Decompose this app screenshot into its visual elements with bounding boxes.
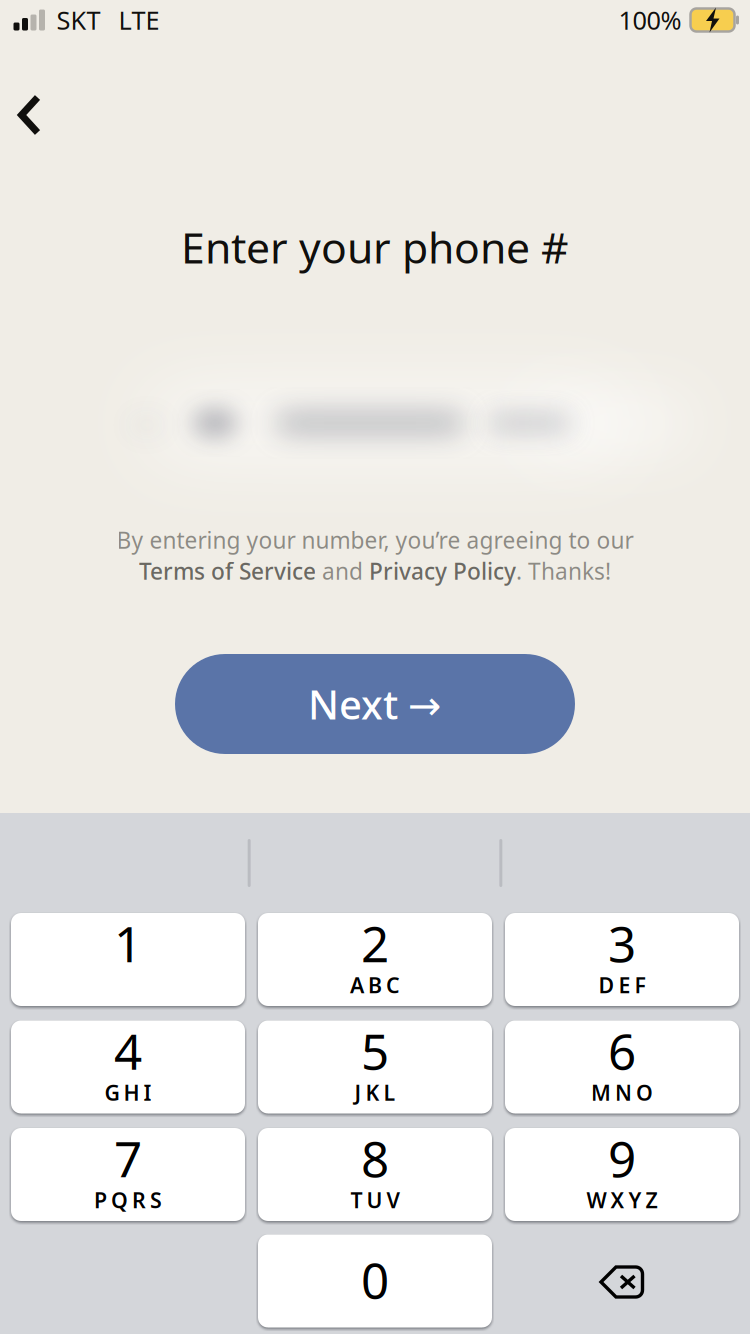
button[interactable]: Delete bbox=[505, 1235, 739, 1328]
staticText: P Q R S bbox=[94, 1186, 162, 1214]
staticText: J K L bbox=[354, 1078, 395, 1107]
button[interactable]: 6 bbox=[505, 1020, 739, 1113]
staticText: 1 bbox=[114, 910, 142, 976]
staticText: G H I bbox=[104, 1078, 151, 1107]
staticText: SKT bbox=[56, 3, 100, 37]
button[interactable]: 3 bbox=[505, 913, 739, 1006]
staticText: M N O bbox=[591, 1078, 653, 1107]
staticText: . Thanks! bbox=[516, 556, 611, 586]
staticText: 7 bbox=[114, 1125, 142, 1191]
staticText: D E F bbox=[598, 971, 645, 999]
staticText: 5 bbox=[361, 1018, 389, 1083]
button[interactable]: 1 bbox=[11, 913, 245, 1006]
staticText: 100% bbox=[618, 3, 681, 37]
button[interactable]: Next → bbox=[175, 654, 575, 754]
staticText: T U V bbox=[350, 1186, 399, 1214]
staticText: Enter your phone # bbox=[181, 219, 569, 275]
staticText: A B C bbox=[350, 971, 400, 999]
staticText: 6 bbox=[608, 1018, 636, 1083]
staticText: Terms of Service bbox=[139, 556, 316, 586]
button[interactable]: 7 bbox=[11, 1128, 245, 1221]
staticText: By entering your number, you’re agreeing… bbox=[116, 525, 633, 555]
staticText: 3 bbox=[608, 910, 636, 976]
staticText: and bbox=[316, 556, 369, 586]
staticText: Next → bbox=[308, 677, 442, 730]
button[interactable]: 2 bbox=[258, 913, 492, 1006]
button[interactable]: 5 bbox=[258, 1020, 492, 1113]
staticText: Privacy Policy bbox=[369, 556, 516, 586]
button[interactable]: 4 bbox=[11, 1020, 245, 1113]
staticText: LTE bbox=[118, 3, 159, 37]
button[interactable]: 8 bbox=[258, 1128, 492, 1221]
staticText: 8 bbox=[361, 1125, 389, 1191]
staticText: 4 bbox=[114, 1018, 142, 1083]
staticText: 2 bbox=[361, 910, 389, 976]
staticText: 0 bbox=[361, 1247, 389, 1312]
button[interactable]: 9 bbox=[505, 1128, 739, 1221]
staticText: 9 bbox=[608, 1125, 636, 1191]
button[interactable]: Back bbox=[0, 44, 63, 144]
button[interactable]: 0 bbox=[258, 1235, 492, 1328]
staticText: W X Y Z bbox=[586, 1186, 657, 1214]
